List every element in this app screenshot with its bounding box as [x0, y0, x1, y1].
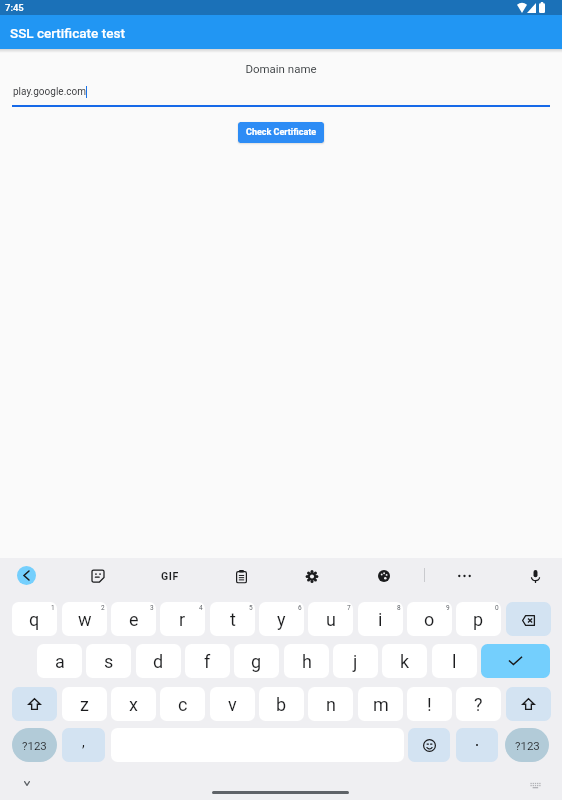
button[interactable]: k	[382, 644, 427, 678]
staticText: u	[326, 609, 336, 630]
staticText: j	[353, 651, 358, 672]
button[interactable]: x	[111, 687, 156, 721]
button[interactable]: Shift	[12, 687, 57, 721]
staticText: 7	[347, 604, 351, 612]
staticText: ?	[474, 694, 483, 715]
staticText: h	[302, 651, 312, 672]
button[interactable]: More options	[451, 563, 477, 589]
staticText: m	[373, 694, 389, 715]
button[interactable]: ?123	[12, 728, 57, 762]
button[interactable]: r	[160, 602, 205, 636]
button[interactable]: play.google.com	[13, 86, 87, 98]
staticText: b	[276, 694, 287, 715]
button[interactable]: ?123	[505, 728, 549, 762]
staticText: i	[378, 609, 383, 630]
staticText: w	[78, 609, 92, 630]
staticText: GIF	[161, 570, 179, 582]
staticText: 1	[51, 604, 55, 612]
staticText: 3	[150, 604, 154, 612]
staticText: x	[129, 694, 138, 715]
button[interactable]: w	[62, 602, 107, 636]
button[interactable]: s	[86, 644, 131, 678]
staticText: 6	[298, 604, 302, 612]
staticText: n	[326, 694, 336, 715]
button[interactable]: Theme	[371, 563, 397, 589]
button[interactable]: z	[62, 687, 107, 721]
staticText: 0	[495, 604, 499, 612]
button[interactable]: Enter	[481, 644, 550, 678]
button[interactable]: Backspace	[506, 602, 551, 636]
staticText: r	[179, 609, 186, 630]
button[interactable]: t	[210, 602, 255, 636]
staticText: play.google.com	[13, 86, 86, 98]
staticText: z	[80, 694, 89, 715]
button[interactable]: Change keyboard	[527, 777, 543, 793]
staticText: Check Certificate	[246, 127, 317, 138]
staticText: 5	[249, 604, 253, 612]
button[interactable]: Stickers	[85, 563, 111, 589]
button[interactable]: a	[37, 644, 82, 678]
button[interactable]: Clipboard	[228, 563, 254, 589]
button[interactable]: i	[358, 602, 403, 636]
button[interactable]: e	[111, 602, 156, 636]
staticText: k	[400, 651, 410, 672]
staticText: 8	[397, 604, 401, 612]
staticText: e	[129, 609, 139, 630]
staticText: q	[29, 609, 40, 630]
button[interactable]: m	[358, 687, 403, 721]
staticText: o	[424, 609, 435, 630]
button[interactable]: f	[185, 644, 230, 678]
staticText: t	[230, 609, 236, 630]
button[interactable]: Settings	[299, 563, 325, 589]
button[interactable]: Back	[17, 566, 36, 585]
button[interactable]: v	[210, 687, 255, 721]
button[interactable]: q	[12, 602, 57, 636]
button[interactable]: y	[259, 602, 304, 636]
button[interactable]: GIF	[157, 563, 183, 589]
button[interactable]: c	[160, 687, 205, 721]
staticText: d	[153, 651, 164, 672]
staticText: 4	[199, 604, 203, 612]
button[interactable]: d	[136, 644, 181, 678]
button[interactable]: l	[432, 644, 477, 678]
staticText: ?123	[22, 739, 47, 752]
staticText: 9	[446, 604, 450, 612]
staticText: 2	[101, 604, 105, 612]
button[interactable]: Period	[456, 728, 498, 762]
button[interactable]: b	[259, 687, 304, 721]
staticText: Domain name	[0, 62, 562, 75]
staticText: s	[104, 651, 114, 672]
staticText: g	[251, 651, 262, 672]
button[interactable]: Shift	[506, 687, 551, 721]
staticText: 7:45	[5, 2, 24, 13]
staticText: a	[55, 651, 65, 672]
staticText: l	[452, 651, 457, 672]
button[interactable]: Emoji	[408, 728, 450, 762]
button[interactable]: g	[234, 644, 279, 678]
staticText: ?123	[515, 739, 540, 752]
staticText: ,	[82, 734, 85, 750]
button[interactable]: Hide keyboard	[17, 773, 37, 793]
button[interactable]: Comma	[62, 728, 105, 762]
staticText: c	[178, 694, 188, 715]
button[interactable]: !	[407, 687, 452, 721]
button[interactable]: Voice input	[522, 563, 548, 589]
staticText: v	[228, 694, 237, 715]
button[interactable]: SSL certificate test	[0, 15, 562, 49]
staticText: !	[427, 694, 432, 715]
button[interactable]: o	[407, 602, 452, 636]
staticText: SSL certificate test	[10, 25, 125, 41]
button[interactable]: p	[456, 602, 501, 636]
button[interactable]: j	[333, 644, 378, 678]
button[interactable]: h	[284, 644, 329, 678]
staticText: f	[204, 651, 211, 672]
staticText: y	[277, 609, 286, 630]
button[interactable]: n	[308, 687, 353, 721]
button[interactable]: u	[308, 602, 353, 636]
button[interactable]: ?	[456, 687, 501, 721]
staticText: p	[473, 609, 484, 630]
button[interactable]: Check Certificate	[238, 122, 324, 143]
